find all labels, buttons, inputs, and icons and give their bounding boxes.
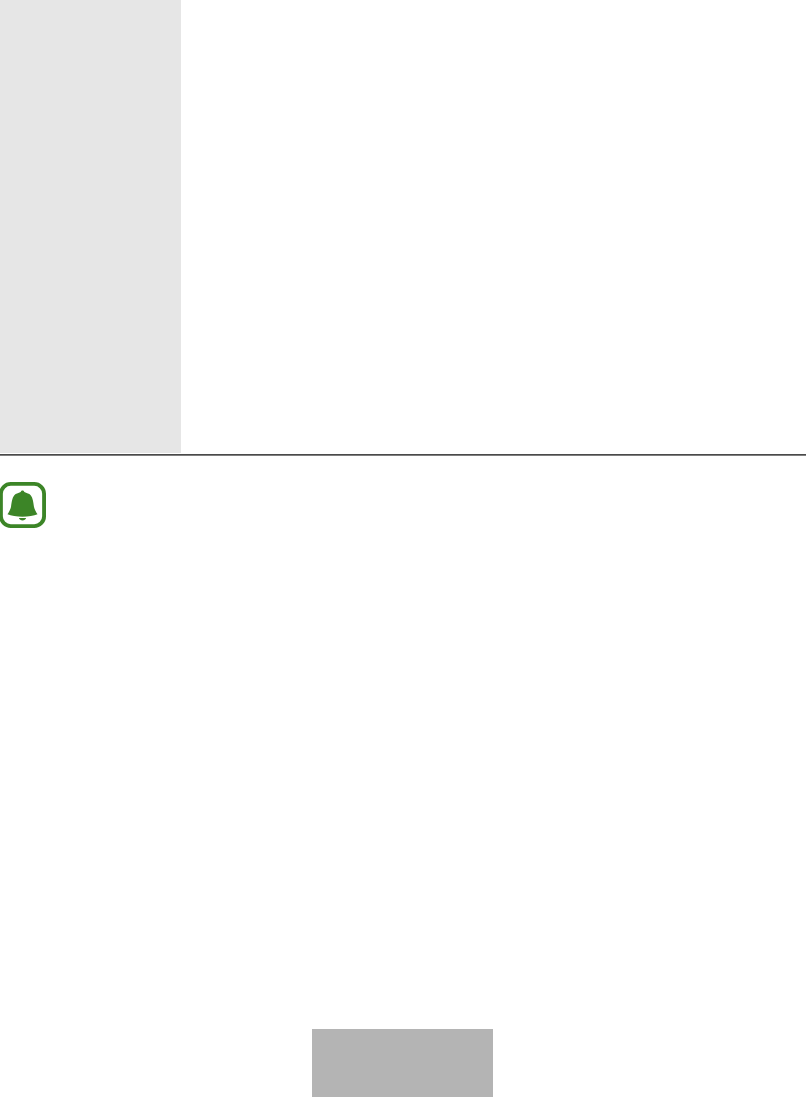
button[interactable]: Notifications [0, 482, 46, 528]
